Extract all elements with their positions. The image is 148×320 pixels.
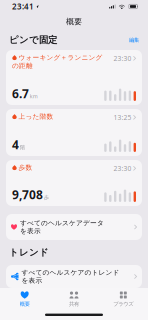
staticText: すべてのヘルスケアデータ: [20, 219, 104, 227]
staticText: 4: [12, 137, 19, 152]
staticText: 歩: [44, 194, 49, 201]
staticText: 23:30: [114, 164, 132, 173]
staticText: 歩数: [18, 163, 32, 172]
staticText: すべてのヘルスケアのトレンド: [21, 268, 119, 276]
staticText: 23:41: [12, 1, 34, 12]
button[interactable]: 編集: [129, 37, 139, 43]
staticText: 23:30: [114, 54, 132, 63]
staticText: 編集: [129, 37, 139, 43]
staticText: km: [30, 93, 38, 100]
button[interactable]: ウォーキング＋ランニング: [6, 50, 142, 105]
button[interactable]: 歩数: [6, 160, 142, 206]
staticText: ウォーキング＋ランニング: [18, 53, 102, 62]
button[interactable]: 上った階数: [6, 109, 142, 156]
button[interactable]: 概要: [0, 288, 49, 310]
staticText: を表示: [20, 227, 41, 235]
staticText: 概要: [66, 17, 82, 26]
button[interactable]: 共有: [49, 288, 99, 310]
staticText: ピンで固定: [9, 34, 57, 46]
staticText: 階: [20, 144, 25, 151]
staticText: 6.7: [12, 86, 29, 101]
staticText: 共有: [69, 301, 79, 307]
staticText: 9,708: [12, 187, 43, 202]
staticText: を表示: [21, 276, 42, 285]
button[interactable]: ブラウズ: [99, 288, 148, 310]
button[interactable]: すべてのヘルスケアのトレンド: [6, 265, 142, 288]
staticText: 概要: [20, 301, 30, 307]
staticText: 13:25: [114, 113, 132, 122]
staticText: トレンド: [9, 247, 49, 258]
staticText: ブラウズ: [113, 301, 133, 307]
staticText: の距離: [12, 62, 33, 70]
button[interactable]: すべてのヘルスケアデータ: [6, 214, 142, 240]
staticText: 上った階数: [18, 112, 53, 121]
